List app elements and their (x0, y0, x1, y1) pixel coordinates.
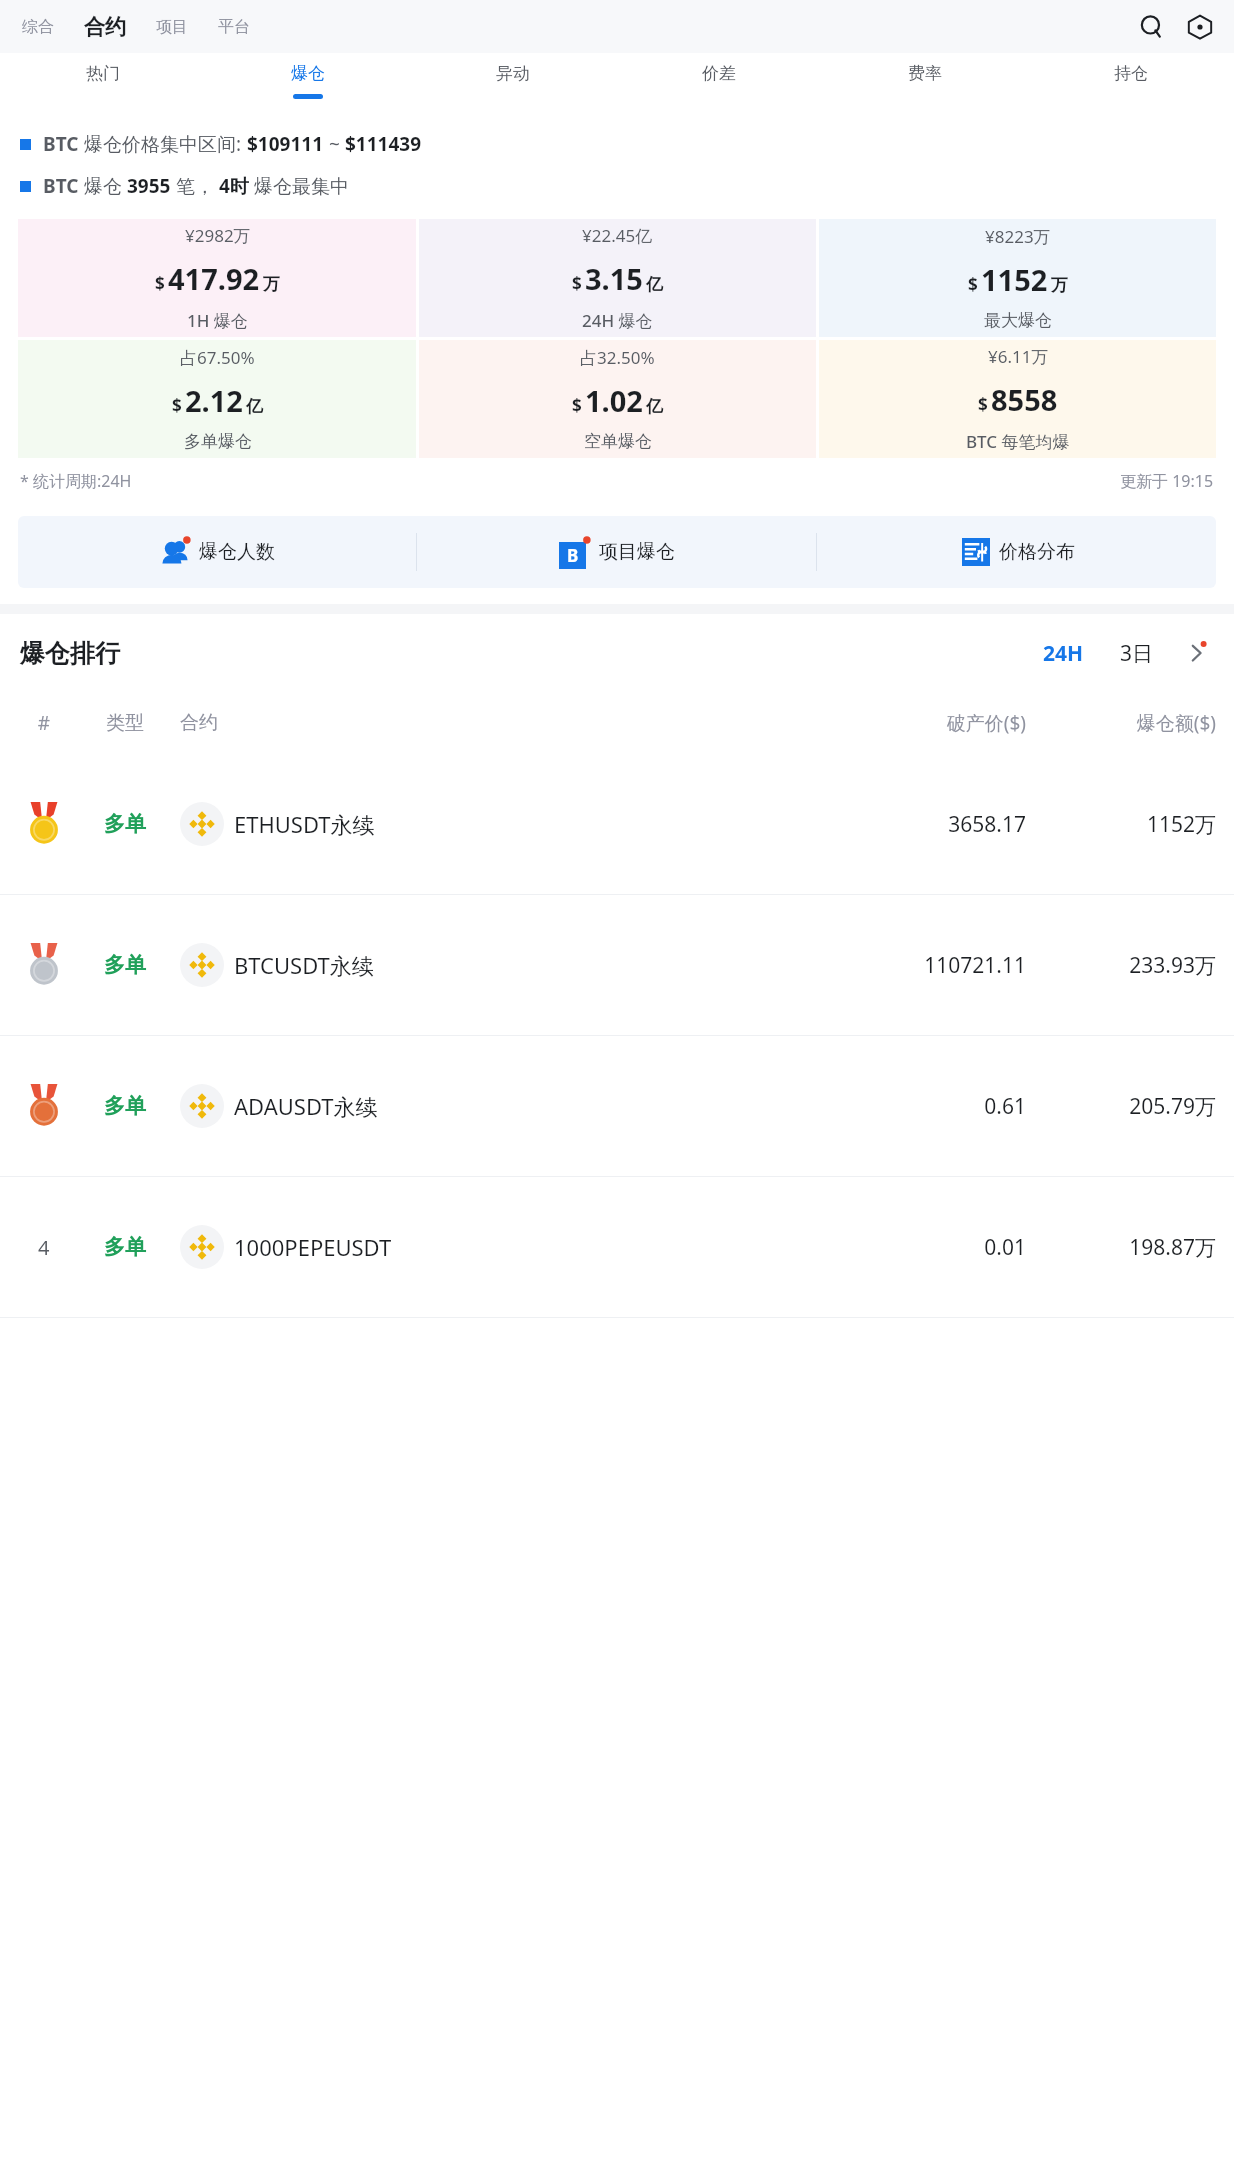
button[interactable]: ¥2982万 (18, 219, 416, 337)
button[interactable]: B (417, 516, 816, 588)
staticText: ¥2982万 (185, 224, 251, 247)
staticText: BTCUSDT永续 (234, 950, 374, 980)
staticText: 3日 (1120, 639, 1154, 668)
staticText: 3658.17 (816, 810, 1026, 839)
staticText: 亿 (646, 396, 663, 417)
staticText: 万 (263, 274, 280, 295)
button[interactable]: 占32.50% (419, 340, 816, 458)
staticText: 爆仓价格集中区间: (84, 131, 247, 157)
staticText: 最大爆仓 (984, 310, 1052, 331)
staticText: 3.15 (585, 259, 643, 298)
staticText: 综合 (22, 17, 54, 37)
button[interactable]: 合约 (80, 14, 130, 40)
staticText: 破产价($) (816, 710, 1026, 736)
staticText: BTC (43, 131, 84, 157)
staticText: 多单 (104, 1093, 146, 1119)
staticText: 异动 (496, 63, 530, 84)
button[interactable]: 爆仓人数 (18, 516, 416, 588)
staticText: 110721.11 (816, 951, 1026, 980)
staticText: ¥8223万 (985, 225, 1051, 248)
staticText: 233.93万 (1026, 951, 1216, 980)
button[interactable]: 平台 (214, 17, 254, 37)
staticText: 爆仓 (291, 63, 325, 84)
staticText: 占32.50% (580, 346, 655, 369)
staticText: 价格分布 (999, 540, 1075, 564)
staticText: 198.87万 (1026, 1233, 1216, 1262)
staticText: 多单爆仓 (184, 431, 252, 452)
button[interactable]: 4 (0, 1177, 1234, 1317)
button[interactable]: ¥6.11万 (819, 340, 1216, 458)
staticText: ¥22.45亿 (582, 224, 653, 247)
staticText: $ (572, 394, 582, 417)
button[interactable]: ¥22.45亿 (419, 219, 816, 337)
staticText: 爆仓 (84, 173, 127, 199)
staticText: 合约 (180, 711, 816, 735)
button[interactable]: 24H (1037, 639, 1090, 668)
staticText: 417.92 (168, 259, 260, 298)
staticText: 爆仓人数 (199, 540, 275, 564)
staticText: B (567, 544, 579, 567)
staticText: 1H 爆仓 (187, 309, 248, 332)
button[interactable]: 占67.50% (18, 340, 416, 458)
staticText: 0.61 (816, 1092, 1026, 1121)
staticText: 205.79万 (1026, 1092, 1216, 1121)
staticText: 3955 (127, 173, 171, 199)
staticText: 合约 (84, 14, 126, 40)
staticText: 爆仓最集中 (249, 173, 349, 199)
staticText: 4时 (219, 173, 249, 199)
staticText: 笔， (171, 173, 219, 199)
staticText: $ (978, 393, 988, 416)
staticText: ETHUSDT永续 (234, 809, 375, 839)
staticText: $109111 (247, 131, 324, 157)
staticText: $ (172, 394, 182, 417)
button[interactable]: 多单 (0, 1036, 1234, 1176)
staticText: 类型 (70, 711, 180, 735)
staticText: $111439 (345, 131, 422, 157)
staticText: 项目爆仓 (599, 540, 675, 564)
button[interactable]: Settings (1180, 7, 1220, 47)
button[interactable]: 项目 (152, 17, 192, 37)
staticText: BTC 每笔均爆 (966, 430, 1070, 453)
staticText: 空单爆仓 (584, 431, 652, 452)
staticText: 费率 (908, 63, 942, 84)
staticText: $ (572, 272, 582, 295)
staticText: 多单 (104, 952, 146, 978)
staticText: 万 (1051, 275, 1068, 296)
staticText: ¥6.11万 (988, 345, 1049, 368)
staticText: ~ (324, 131, 345, 157)
button[interactable]: More (1180, 636, 1214, 670)
button[interactable]: 爆仓 (205, 53, 410, 115)
staticText: 1.02 (585, 381, 643, 420)
staticText: 占67.50% (180, 346, 255, 369)
staticText: 亿 (246, 396, 263, 417)
staticText: 0.01 (816, 1233, 1026, 1262)
button[interactable]: ¥8223万 (819, 219, 1216, 337)
staticText: 1152 (981, 260, 1048, 299)
staticText: 1000PEPEUSDT (234, 1232, 392, 1262)
button[interactable]: 持仓 (1028, 53, 1234, 115)
staticText: 8558 (991, 380, 1058, 419)
staticText: ADAUSDT永续 (234, 1091, 378, 1121)
staticText: 1152万 (1026, 810, 1216, 839)
button[interactable]: 多单 (0, 754, 1234, 894)
staticText: 多单 (104, 811, 146, 837)
button[interactable]: 异动 (410, 53, 616, 115)
button[interactable]: 价格分布 (817, 516, 1216, 588)
staticText: $ (968, 273, 978, 296)
button[interactable]: Search (1132, 7, 1172, 47)
staticText: 价差 (702, 63, 736, 84)
staticText: 持仓 (1114, 63, 1148, 84)
staticText: 4 (38, 1234, 50, 1261)
staticText: 多单 (104, 1234, 146, 1260)
staticText: 2.12 (185, 381, 243, 420)
staticText: 平台 (218, 17, 250, 37)
button[interactable]: 多单 (0, 895, 1234, 1035)
button[interactable]: 热门 (0, 53, 205, 115)
button[interactable]: 价差 (616, 53, 822, 115)
staticText: $ (155, 272, 165, 295)
staticText: BTC (43, 173, 84, 199)
button[interactable]: 3日 (1114, 639, 1160, 668)
staticText: 爆仓额($) (1026, 710, 1216, 736)
button[interactable]: 综合 (18, 17, 58, 37)
button[interactable]: 费率 (822, 53, 1028, 115)
